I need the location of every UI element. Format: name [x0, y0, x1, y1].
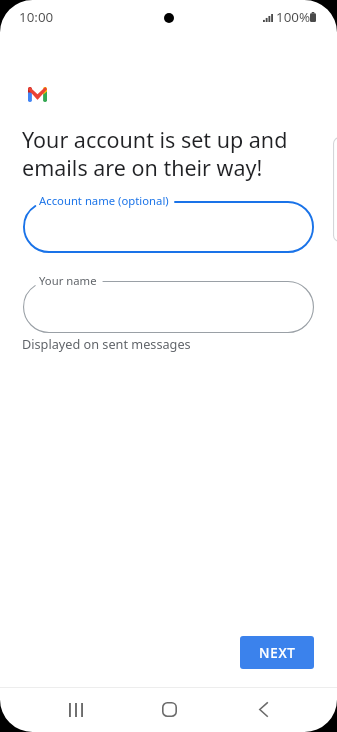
button[interactable]: Recents	[55, 689, 96, 730]
staticText: Displayed on sent messages	[22, 335, 191, 352]
staticText: 10:00	[19, 8, 54, 26]
staticText: Account name (optional)	[39, 193, 169, 208]
staticText: 100%	[276, 8, 311, 26]
button[interactable]: Home	[149, 689, 190, 730]
button[interactable]: Back	[243, 689, 284, 730]
staticText: Your account is set up and emails are on…	[22, 125, 332, 183]
button[interactable]: Account name (optional)	[23, 201, 314, 253]
staticText: NEXT	[259, 644, 296, 662]
button[interactable]: Your name	[23, 281, 314, 333]
button[interactable]: NEXT	[240, 636, 314, 669]
staticText: Your name	[39, 273, 97, 288]
